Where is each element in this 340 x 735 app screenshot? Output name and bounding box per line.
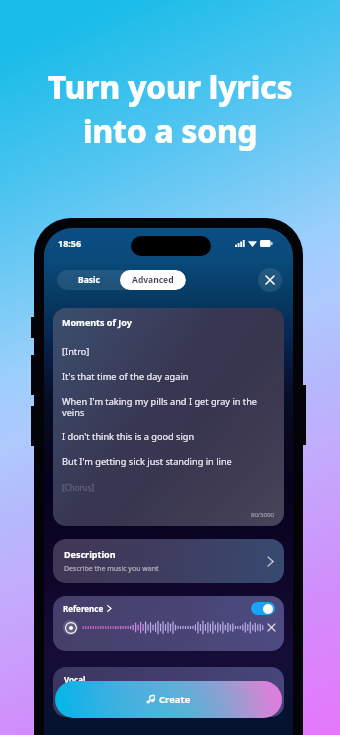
button[interactable]: Close — [258, 268, 282, 292]
staticText: 80/3000 — [251, 511, 274, 519]
button[interactable]: Toggle reference — [251, 602, 275, 615]
staticText: Describe the music you want — [64, 564, 159, 574]
button[interactable]: Advanced — [120, 270, 186, 290]
button[interactable]: Play — [63, 620, 78, 635]
button[interactable]: Basic — [57, 270, 186, 290]
staticText: But I'm getting sick just standing in li… — [62, 455, 232, 468]
button[interactable]: Reference — [53, 596, 284, 651]
staticText: Reference — [63, 603, 104, 614]
staticText: Basic — [78, 274, 100, 286]
button[interactable]: Remove reference — [268, 624, 275, 631]
staticText: It's that time of the day again — [62, 370, 189, 383]
staticText: When I'm taking my pills and I get gray … — [62, 395, 275, 418]
staticText: I don't think this is a good sign — [62, 430, 195, 443]
staticText: Turn your lyrics into a song — [0, 65, 340, 153]
button[interactable]: Vocal — [53, 667, 284, 717]
staticText: [Chorus] — [62, 482, 95, 493]
staticText: Description — [64, 548, 116, 560]
staticText: Create — [159, 693, 191, 706]
button[interactable]: Basic — [57, 270, 120, 290]
button[interactable]: Create — [55, 681, 282, 718]
staticText: [Intro] — [62, 345, 90, 358]
staticText: Vocal — [64, 674, 86, 685]
button[interactable]: Moments of Joy — [53, 308, 284, 526]
staticText: Advanced — [132, 274, 174, 286]
staticText: Moments of Joy — [62, 316, 132, 328]
staticText: 18:56 — [58, 237, 82, 249]
button[interactable]: Description — [53, 539, 284, 583]
